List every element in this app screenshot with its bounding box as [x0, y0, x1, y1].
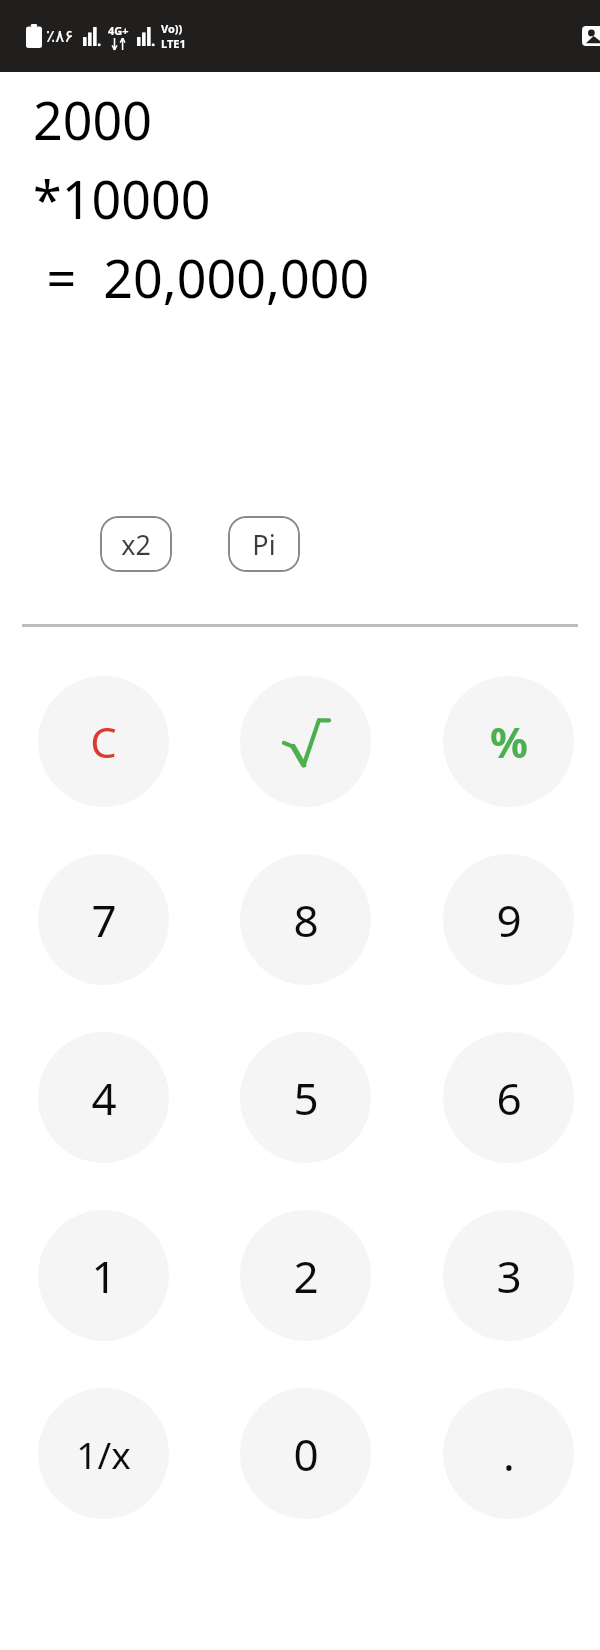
staticText: 4 — [91, 1068, 117, 1128]
button[interactable]: Square root — [240, 676, 371, 807]
staticText: ٪۸۶ — [46, 26, 74, 46]
button[interactable]: x2 — [100, 516, 172, 572]
button[interactable]: 1 — [38, 1210, 169, 1341]
button[interactable]: 9 — [443, 854, 574, 985]
button[interactable]: 8 — [240, 854, 371, 985]
button[interactable]: Pi — [228, 516, 300, 572]
button[interactable]: C — [38, 676, 169, 807]
staticText: *10000 — [33, 163, 211, 234]
staticText: % — [490, 713, 528, 770]
staticText: 4G+ — [108, 23, 129, 38]
staticText: 2000 — [33, 84, 152, 155]
button[interactable]: % — [443, 676, 574, 807]
staticText: = 20,000,000 — [33, 242, 370, 313]
staticText: Vo)) — [161, 21, 183, 36]
staticText: 1 — [91, 1246, 117, 1306]
staticText: 0 — [293, 1424, 319, 1484]
staticText: 5 — [293, 1068, 319, 1128]
staticText: . — [503, 1424, 515, 1484]
button[interactable]: . — [443, 1388, 574, 1519]
staticText: C — [90, 713, 117, 770]
staticText: 6 — [496, 1068, 522, 1128]
button[interactable]: 6 — [443, 1032, 574, 1163]
staticText: Pi — [252, 526, 276, 563]
staticText: LTE1 — [161, 36, 186, 51]
button[interactable]: 4 — [38, 1032, 169, 1163]
button[interactable]: 2 — [240, 1210, 371, 1341]
staticText: 2 — [293, 1246, 319, 1306]
staticText: 8 — [293, 890, 319, 950]
other: Screenshot — [582, 23, 600, 49]
staticText: 7 — [91, 890, 117, 950]
button[interactable]: 0 — [240, 1388, 371, 1519]
staticText: x2 — [121, 526, 151, 563]
button[interactable]: 1/x — [38, 1388, 169, 1519]
staticText: 1/x — [76, 1429, 131, 1479]
staticText: 3 — [496, 1246, 522, 1306]
button[interactable]: 7 — [38, 854, 169, 985]
button[interactable]: 5 — [240, 1032, 371, 1163]
staticText: 9 — [496, 890, 522, 950]
button[interactable]: 3 — [443, 1210, 574, 1341]
